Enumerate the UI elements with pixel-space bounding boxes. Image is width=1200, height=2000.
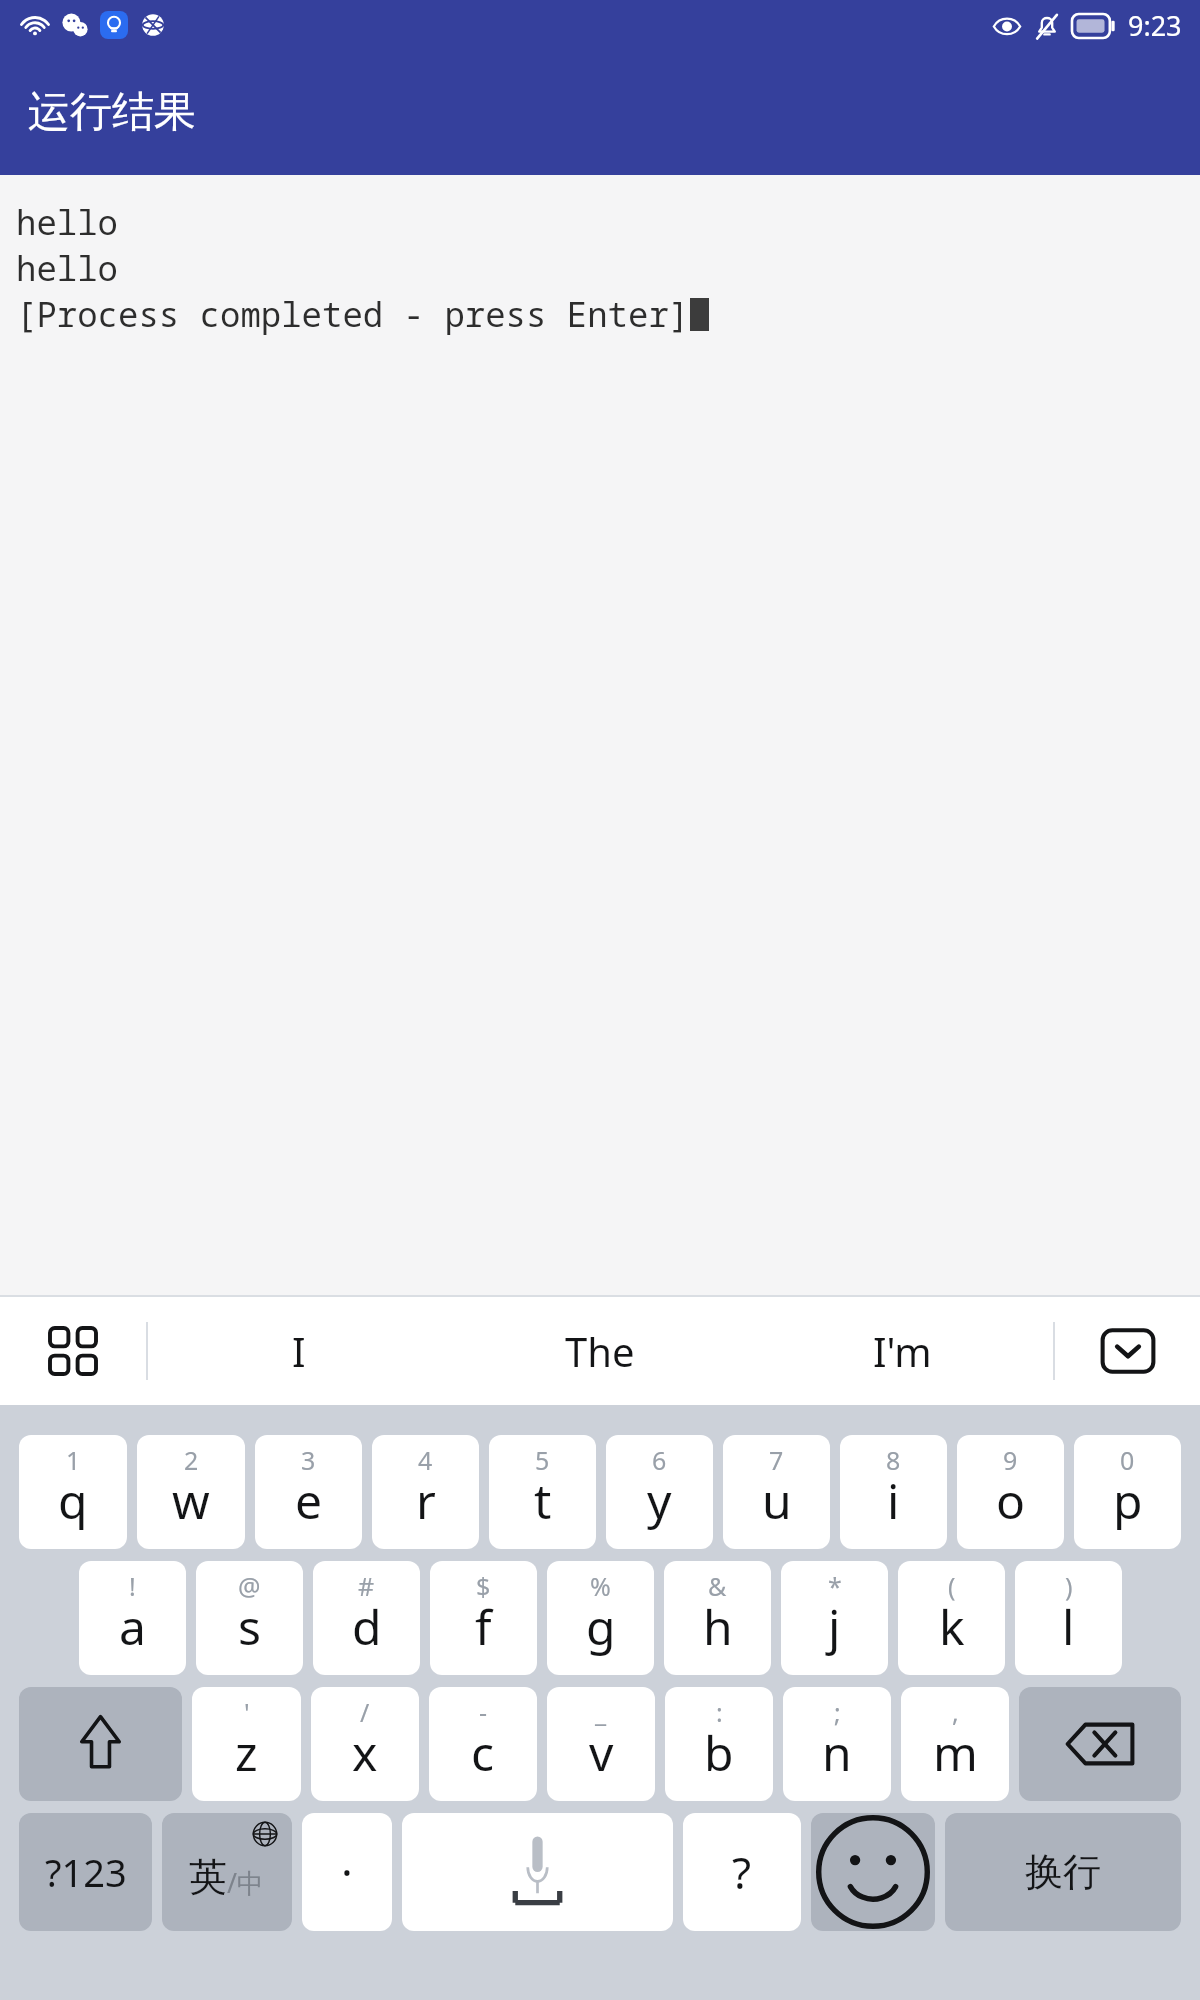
staticText: I'm [873,1324,932,1378]
button[interactable]: ) [1015,1561,1122,1675]
staticText: l [1062,1594,1075,1659]
button[interactable]: ! [79,1561,186,1675]
button[interactable]: ' [192,1687,301,1801]
button[interactable]: 英 [162,1813,292,1931]
button[interactable]: _ [547,1687,655,1801]
staticText: r [416,1468,436,1533]
staticText: - [479,1695,488,1729]
staticText: # [358,1569,375,1603]
button[interactable]: & [664,1561,771,1675]
button[interactable]: Keyboard layouts [0,1297,146,1405]
staticText: 0 [1120,1443,1135,1477]
staticText: 4 [418,1443,433,1477]
button[interactable]: ?123 [19,1813,152,1931]
staticText: % [590,1569,611,1603]
staticText: 运行结果 [28,86,196,139]
staticText: o [996,1468,1026,1533]
button[interactable]: 4 [372,1435,479,1549]
staticText: 3 [301,1443,316,1477]
staticText: z [235,1720,258,1785]
staticText: ; [834,1695,841,1729]
button[interactable]: / [311,1687,419,1801]
staticText: 7 [769,1443,784,1477]
staticText: ( [948,1569,956,1603]
staticText: I [292,1324,306,1378]
button[interactable]: $ [430,1561,537,1675]
staticText: 8 [886,1443,901,1477]
staticText: 1 [66,1443,81,1477]
staticText: 5 [535,1443,550,1477]
staticText: · [341,1842,353,1902]
button[interactable]: 换行 [945,1813,1181,1931]
staticText: / [360,1695,370,1729]
staticText: , [952,1695,959,1729]
button[interactable]: ( [898,1561,1005,1675]
staticText: t [534,1468,552,1533]
staticText: ? [732,1842,752,1902]
button[interactable]: 0 [1074,1435,1181,1549]
button[interactable]: Emoji [811,1813,935,1931]
staticText: 2 [184,1443,199,1477]
button[interactable]: Space [402,1813,673,1931]
button[interactable]: 2 [137,1435,245,1549]
staticText: : [716,1695,723,1729]
staticText: 9:23 [1128,7,1182,44]
button[interactable]: - [429,1687,537,1801]
staticText: x [352,1720,378,1785]
staticText: [Process completed - press Enter] [16,291,690,337]
button[interactable]: @ [196,1561,303,1675]
button[interactable]: # [313,1561,420,1675]
button[interactable]: 7 [723,1435,830,1549]
staticText: w [172,1468,210,1533]
button[interactable]: Backspace [1019,1687,1181,1801]
staticText: g [586,1594,616,1659]
staticText: The [565,1324,635,1378]
button[interactable]: Hide keyboard [1055,1297,1200,1405]
staticText: @ [238,1569,261,1603]
staticText: ?123 [45,1846,127,1898]
staticText: a [119,1594,146,1659]
button[interactable]: 9 [957,1435,1064,1549]
button[interactable]: 1 [19,1435,127,1549]
staticText: s [238,1594,261,1659]
staticText: /中 [227,1864,265,1901]
staticText: f [475,1594,492,1659]
staticText: j [828,1594,841,1659]
staticText: q [58,1468,88,1533]
staticText: y [647,1468,672,1533]
staticText: d [352,1594,382,1659]
button[interactable]: · [302,1813,392,1931]
staticText: 换行 [1025,1848,1101,1896]
button[interactable]: 8 [840,1435,947,1549]
button[interactable]: I [148,1297,449,1405]
button[interactable]: : [665,1687,773,1801]
staticText: ) [1065,1569,1073,1603]
staticText: n [822,1720,852,1785]
button[interactable]: 5 [489,1435,596,1549]
staticText: e [295,1468,323,1533]
button[interactable]: The [449,1297,751,1405]
staticText: i [887,1468,900,1533]
staticText: hello [16,199,118,245]
staticText: 英 [189,1853,227,1901]
button[interactable]: Shift [19,1687,182,1801]
button[interactable]: % [547,1561,654,1675]
staticText: 9 [1003,1443,1018,1477]
staticText: p [1113,1468,1143,1533]
staticText: k [939,1594,965,1659]
staticText: & [708,1569,727,1603]
button[interactable]: ; [783,1687,891,1801]
button[interactable]: 3 [255,1435,362,1549]
staticText: b [704,1720,734,1785]
button[interactable]: I'm [751,1297,1053,1405]
button[interactable]: ? [683,1813,801,1931]
button[interactable]: 6 [606,1435,713,1549]
staticText: ! [129,1569,136,1603]
button[interactable]: , [901,1687,1009,1801]
staticText: * [828,1569,842,1603]
staticText: 6 [652,1443,667,1477]
button[interactable]: * [781,1561,888,1675]
staticText: hello [16,245,118,291]
staticText: c [471,1720,495,1785]
staticText: v [589,1720,614,1785]
